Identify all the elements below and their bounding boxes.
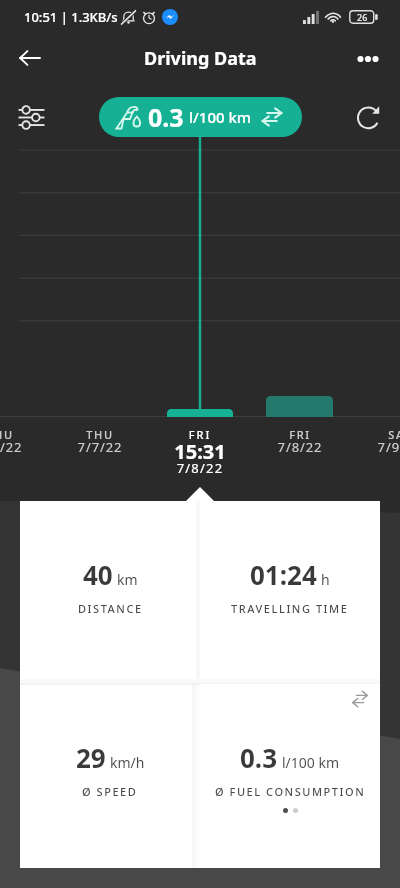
staticText: 7/6/22 xyxy=(0,438,45,456)
button[interactable]: 0.3 xyxy=(200,684,380,868)
staticText: DISTANCE xyxy=(78,601,143,616)
staticText: 0.3 xyxy=(148,100,184,134)
button[interactable]: Refresh xyxy=(356,103,384,131)
staticText: THU xyxy=(0,427,45,442)
staticText: km xyxy=(117,570,138,589)
staticText: TRAVELLING TIME xyxy=(231,601,349,616)
button[interactable]: 01:24 xyxy=(200,501,380,684)
button[interactable]: Filter xyxy=(18,104,45,131)
staticText: Ø SPEED xyxy=(82,784,138,799)
button[interactable]: THU xyxy=(0,427,45,467)
staticText: l/100 km xyxy=(282,753,340,772)
staticText: h xyxy=(321,570,330,589)
staticText: 7/9/22 xyxy=(355,438,400,456)
button[interactable]: 40 xyxy=(20,501,200,684)
staticText: THU xyxy=(55,427,145,442)
staticText: 01:24 xyxy=(250,557,317,592)
staticText: 7/8/22 xyxy=(140,459,260,477)
staticText: Driving Data xyxy=(144,46,257,71)
staticText: 15:31 xyxy=(140,438,260,465)
staticText: 7/7/22 xyxy=(55,438,145,456)
button[interactable]: Swap unit xyxy=(351,690,369,708)
staticText: 0.3 xyxy=(240,740,278,775)
button[interactable]: Back xyxy=(16,43,46,73)
button[interactable]: THU xyxy=(55,427,145,467)
button[interactable]: 0.3 xyxy=(99,97,302,137)
button[interactable]: SAT xyxy=(355,427,400,467)
button[interactable]: FRI xyxy=(140,427,260,487)
staticText: 10:51 | 1.3KB/s xyxy=(24,8,118,26)
staticText: km/h xyxy=(110,753,145,772)
staticText: 7/8/22 xyxy=(255,438,345,456)
staticText: l/100 km xyxy=(189,107,252,127)
staticText: FRI xyxy=(255,427,345,442)
button[interactable]: More options xyxy=(356,43,386,73)
staticText: Ø FUEL CONSUMPTION xyxy=(215,784,366,799)
staticText: SAT xyxy=(355,427,400,442)
button[interactable]: 29 xyxy=(20,684,200,868)
staticText: 26 xyxy=(357,11,368,23)
staticText: 29 xyxy=(76,740,106,775)
button[interactable]: FRI xyxy=(255,427,345,467)
staticText: FRI xyxy=(140,427,260,442)
staticText: 40 xyxy=(83,557,113,592)
